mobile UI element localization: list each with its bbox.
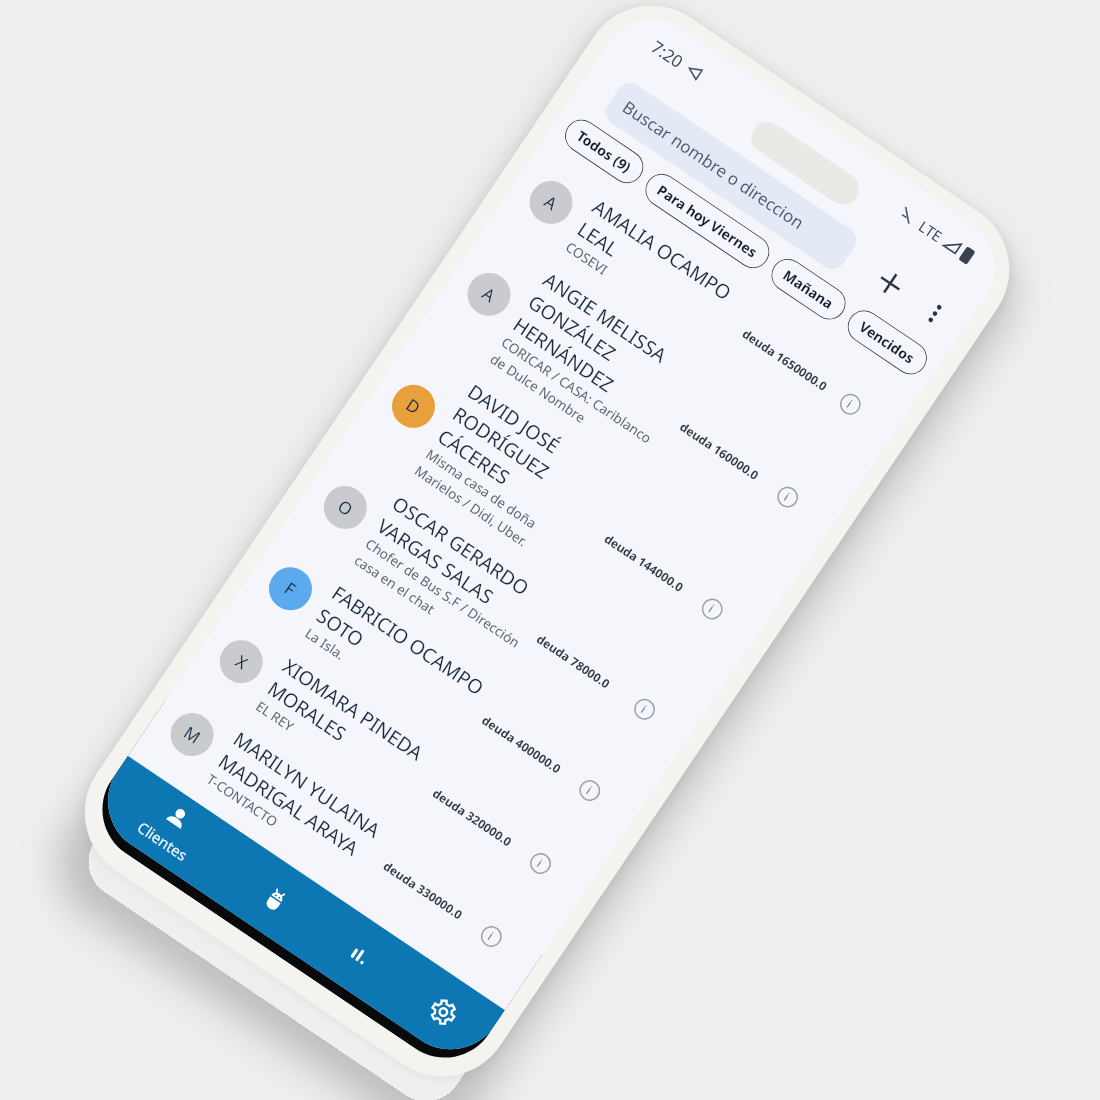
staticText: i (844, 396, 856, 411)
staticText: LTE (915, 216, 947, 246)
staticText: O (333, 494, 358, 521)
staticText: deuda 160000.0 (677, 418, 762, 483)
staticText: F (280, 577, 301, 601)
staticText: CORICAR / CASA: Cariblanco de Dulce Nomb… (487, 333, 668, 473)
staticText: i (781, 489, 794, 504)
staticText: Misma casa de doña Marielos / Didi, Uber… (411, 445, 593, 584)
staticText: i (534, 855, 547, 871)
staticText: EL REY (252, 697, 297, 735)
button[interactable]: Todos (9) (558, 113, 650, 190)
staticText: deuda 1650000.0 (740, 325, 831, 394)
staticText: A (478, 282, 500, 307)
button[interactable]: XIOMARA PINEDA MORALES (182, 602, 609, 929)
button[interactable]: Vencidos (841, 304, 933, 381)
button[interactable]: Info (513, 835, 568, 891)
button[interactable]: Mañana (765, 252, 852, 326)
staticText: deuda 78000.0 (534, 630, 613, 691)
button[interactable]: Info (562, 762, 617, 818)
staticText: Todos (9) (573, 126, 635, 176)
staticText: A (540, 190, 562, 215)
staticText: AMALIA OCAMPO LEAL (572, 193, 763, 346)
button[interactable]: Clientes (87, 756, 254, 900)
button[interactable]: OSCAR GERARDO VARGAS SALAS (281, 439, 718, 783)
staticText: Buscar nombre o direccion (618, 95, 808, 234)
staticText: Para hoy Viernes (654, 180, 761, 262)
staticText: Clientes (133, 817, 192, 865)
button[interactable]: MARILYN YULAINA MADRIGAL ARAYA (133, 674, 560, 1002)
button[interactable]: Buscar nombre o direccion (600, 78, 862, 274)
button[interactable]: Info (760, 469, 815, 524)
button[interactable]: DAVID JOSÉ RODRÍGUEZ CÁCERES (341, 327, 794, 693)
button[interactable]: More options (903, 282, 967, 346)
button[interactable]: Tab 2 (297, 897, 421, 1013)
button[interactable]: Add (858, 251, 922, 315)
staticText: X (231, 650, 252, 674)
button[interactable]: Info (822, 376, 878, 431)
staticText: Mañana (780, 265, 837, 313)
staticText: i (638, 701, 651, 716)
staticText: La Isla. (302, 624, 348, 664)
staticText: ANGIE MELISSA GONZÁLEZ HERNÁNDEZ (508, 266, 713, 441)
button[interactable]: Tab 3 (381, 954, 505, 1070)
staticText: D (402, 393, 425, 419)
staticText: T-CONTACTO (203, 770, 281, 831)
button[interactable]: FABRICIO OCAMPO SOTO (232, 529, 658, 856)
staticText: i (485, 928, 497, 943)
button[interactable]: AMALIA OCAMPO LEAL (492, 142, 919, 470)
staticText: XIOMARA PINEDA MORALES (263, 652, 453, 805)
staticText: OSCAR GERARDO VARGAS SALAS (372, 490, 562, 643)
staticText: 7:20 (647, 35, 688, 73)
staticText: M (179, 721, 205, 749)
staticText: Chofer de Bus S.F / Dirección casa en el… (351, 535, 532, 674)
staticText: DAVID JOSÉ RODRÍGUEZ CÁCERES (433, 378, 638, 553)
staticText: MARILYN YULAINA MADRIGAL ARAYA (213, 725, 404, 878)
staticText: i (706, 601, 718, 616)
staticText: Vencidos (856, 317, 919, 368)
staticText: deuda 144000.0 (601, 530, 687, 595)
button[interactable]: ANGIE MELISSA GONZÁLEZ HERNÁNDEZ (417, 215, 869, 582)
button[interactable]: Info (684, 581, 740, 636)
staticText: deuda 320000.0 (430, 785, 515, 849)
button[interactable]: Info (617, 681, 672, 736)
staticText: FABRICIO OCAMPO SOTO (312, 579, 502, 732)
staticText: i (583, 782, 596, 798)
button[interactable]: Tab 1 (213, 841, 337, 957)
staticText: deuda 400000.0 (479, 712, 564, 776)
button[interactable]: Info (463, 908, 519, 963)
staticText: deuda 330000.0 (381, 858, 466, 922)
button[interactable]: Para hoy Viernes (639, 167, 776, 275)
staticText: COSEVI (562, 238, 611, 279)
